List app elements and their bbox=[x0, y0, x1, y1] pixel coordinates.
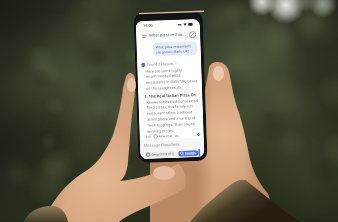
staticText: Found 23 results › bbox=[147, 61, 177, 67]
button[interactable]: What pizza restaurants are good in Bath,… bbox=[152, 41, 198, 57]
staticText: Message DeepSeek bbox=[144, 142, 180, 148]
staticText: What pizza restaurants are good in Bath,… bbox=[155, 43, 195, 54]
button[interactable]: Search bbox=[178, 150, 198, 157]
staticText: Edit bbox=[146, 135, 152, 139]
staticText: Here are some highly recommended pizza r… bbox=[145, 67, 199, 91]
staticText: Search bbox=[185, 151, 196, 155]
staticText: 14:06 bbox=[143, 23, 153, 28]
staticText: etc. bbox=[175, 134, 181, 138]
staticText: New chat bbox=[159, 134, 173, 138]
staticText: What pizza restau... bbox=[149, 31, 186, 38]
button[interactable]: DeepThink (R1) bbox=[144, 151, 176, 158]
staticText: 1. The Real Italian Pizza Co. bbox=[144, 92, 197, 99]
button[interactable]: Voice input bbox=[198, 149, 200, 157]
staticText: DeepThink (R1) bbox=[151, 152, 174, 157]
button[interactable]: Open menu bbox=[140, 32, 148, 40]
staticText: Known for its traditional wood-fired piz… bbox=[146, 98, 201, 134]
button[interactable]: New chat bbox=[188, 30, 196, 38]
